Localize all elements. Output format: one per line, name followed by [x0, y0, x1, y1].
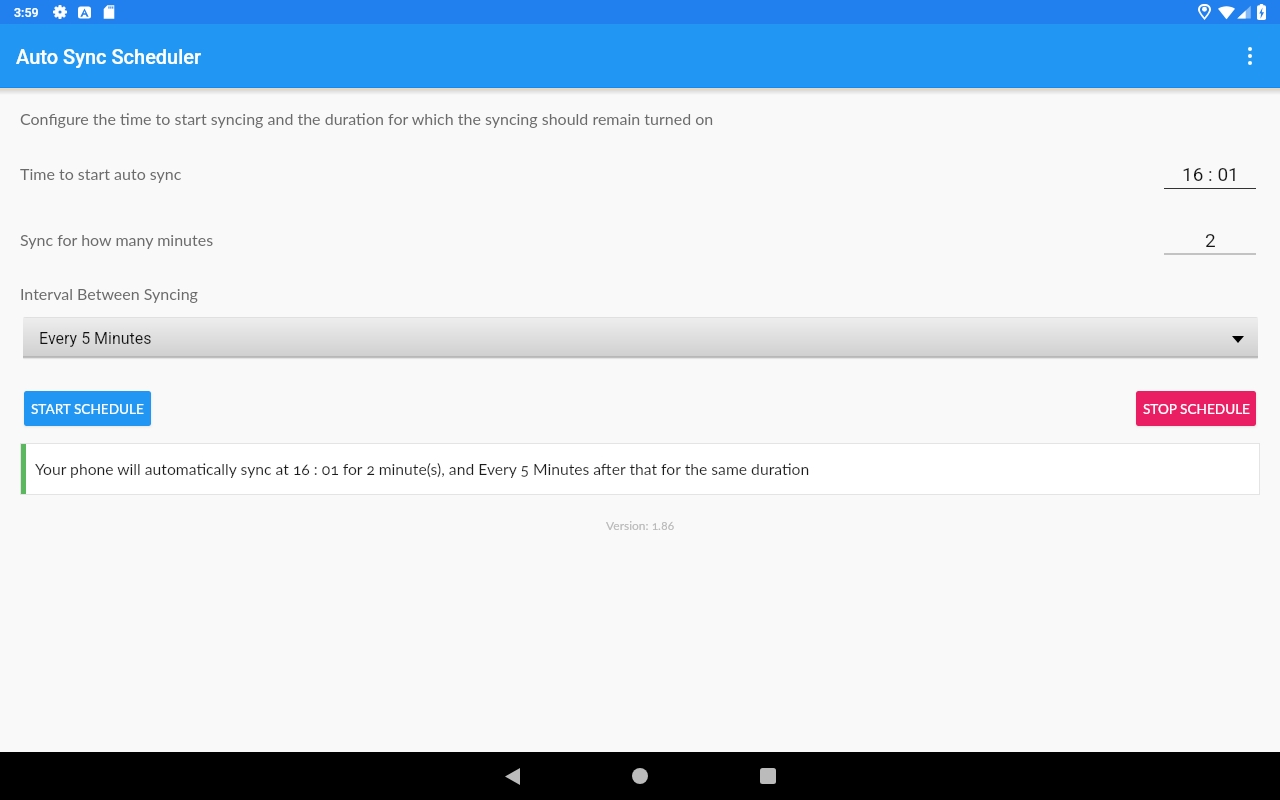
- staticText: Interval Between Syncing: [20, 284, 198, 303]
- button[interactable]: STOP SCHEDULE: [1136, 391, 1256, 426]
- button[interactable]: Every 5 Minutes: [23, 317, 1258, 360]
- button[interactable]: Recents: [736, 752, 800, 800]
- button[interactable]: Back: [480, 752, 544, 800]
- button[interactable]: START SCHEDULE: [24, 391, 151, 426]
- staticText: Version: 1.86: [0, 518, 1280, 532]
- staticText: Auto Sync Scheduler: [16, 45, 202, 68]
- staticText: 2: [1205, 229, 1216, 251]
- staticText: Time to start auto sync: [20, 164, 182, 183]
- staticText: START SCHEDULE: [31, 401, 144, 417]
- staticText: Configure the time to start syncing and …: [20, 109, 714, 128]
- staticText: Your phone will automatically sync at 16…: [35, 460, 810, 479]
- button[interactable]: Your phone will automatically sync at 16…: [20, 443, 1260, 495]
- button[interactable]: 2: [1164, 227, 1256, 255]
- staticText: Every 5 Minutes: [39, 329, 152, 348]
- staticText: STOP SCHEDULE: [1143, 401, 1250, 417]
- staticText: 3:59: [14, 5, 39, 20]
- staticText: 16 : 01: [1182, 163, 1239, 185]
- staticText: Sync for how many minutes: [20, 230, 214, 249]
- button[interactable]: 16 : 01: [1164, 161, 1256, 189]
- button[interactable]: More options: [1226, 32, 1274, 80]
- button[interactable]: Home: [608, 752, 672, 800]
